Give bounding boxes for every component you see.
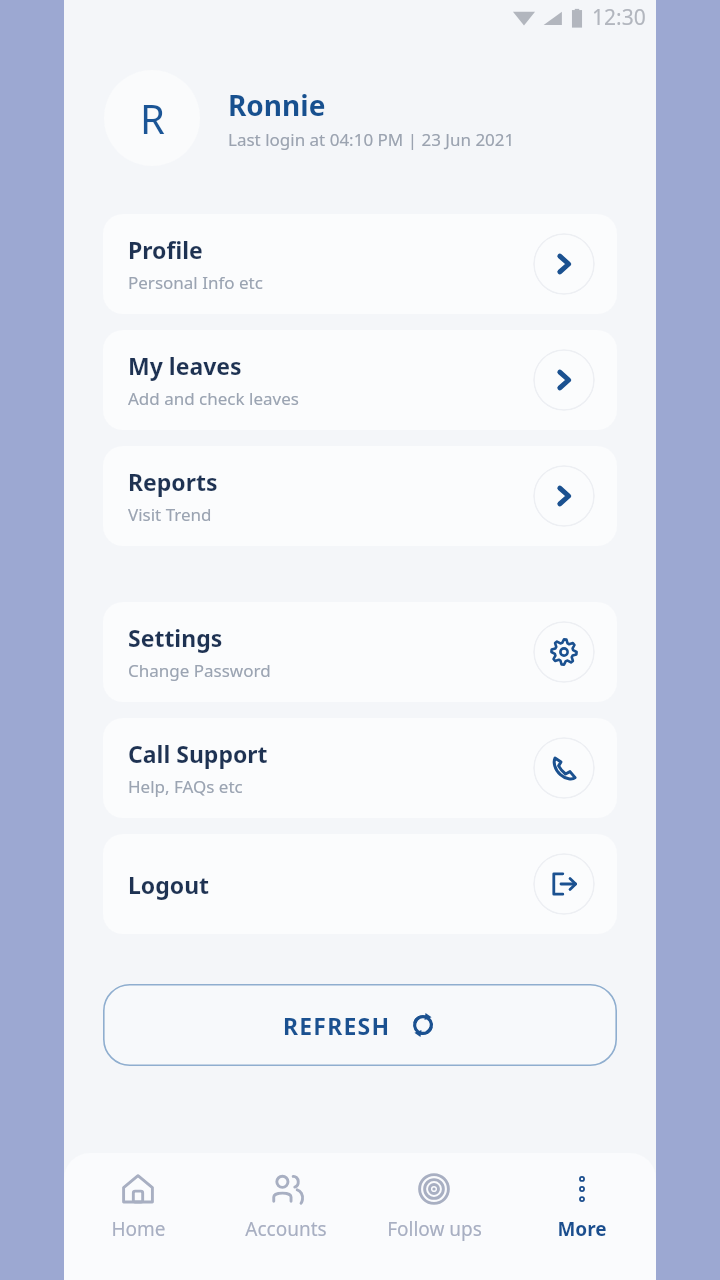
staticText: Help, FAQs etc [128, 775, 243, 798]
staticText: Home [111, 1216, 166, 1242]
staticText: Profile [128, 234, 203, 265]
staticText: Visit Trend [128, 503, 212, 526]
other: Accounts [268, 1171, 304, 1207]
staticText: Settings [128, 622, 223, 653]
staticText: REFRESH [283, 1010, 391, 1041]
button[interactable]: REFRESH [103, 984, 617, 1066]
staticText: Last login at 04:10 PM | 23 Jun 2021 [228, 128, 515, 151]
other: Follow ups [416, 1171, 452, 1207]
staticText: Add and check leaves [128, 387, 299, 410]
button[interactable]: Accounts [212, 1171, 360, 1280]
button[interactable]: Settings [103, 602, 617, 702]
other: Home [120, 1171, 156, 1207]
staticText: My leaves [128, 350, 242, 381]
staticText: Follow ups [387, 1216, 482, 1242]
staticText: Change Password [128, 659, 271, 682]
staticText: Ronnie [228, 86, 326, 124]
button[interactable]: Home [64, 1171, 212, 1280]
staticText: Logout [128, 869, 210, 900]
button[interactable]: Logout [103, 834, 617, 934]
staticText: Personal Info etc [128, 271, 263, 294]
button[interactable]: Reports [103, 446, 617, 546]
other: More [564, 1171, 600, 1207]
staticText: Call Support [128, 738, 268, 769]
staticText: Reports [128, 466, 218, 497]
button[interactable]: R [104, 70, 200, 166]
button[interactable]: Follow ups [360, 1171, 508, 1280]
staticText: 12:30 [592, 3, 646, 32]
button[interactable]: My leaves [103, 330, 617, 430]
staticText: Accounts [245, 1216, 327, 1242]
button[interactable]: Profile [103, 214, 617, 314]
staticText: R [140, 91, 165, 145]
button[interactable]: Call Support [103, 718, 617, 818]
staticText: More [557, 1216, 607, 1242]
button[interactable]: More [508, 1171, 656, 1280]
